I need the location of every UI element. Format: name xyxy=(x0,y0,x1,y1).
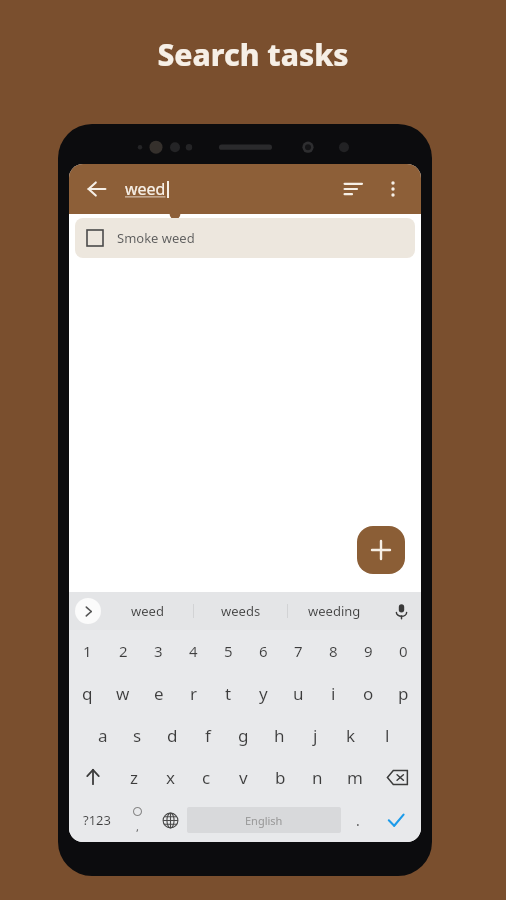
staticText: d xyxy=(167,724,178,747)
staticText: y xyxy=(259,682,268,705)
button[interactable]: b xyxy=(262,756,299,798)
staticText: s xyxy=(133,724,142,747)
staticText: e xyxy=(154,682,164,705)
staticText: z xyxy=(130,766,138,789)
staticText: q xyxy=(82,682,93,705)
button[interactable]: Done xyxy=(374,798,417,842)
staticText: c xyxy=(202,766,211,789)
button[interactable]: weed xyxy=(125,178,333,200)
staticText: h xyxy=(274,724,285,747)
button[interactable]: Emoji and comma xyxy=(121,798,154,842)
button[interactable]: o xyxy=(351,672,386,714)
staticText: o xyxy=(363,682,374,705)
staticText: 1 xyxy=(83,641,92,661)
button[interactable]: s xyxy=(120,714,155,756)
staticText: t xyxy=(225,682,232,705)
button[interactable]: y xyxy=(246,672,281,714)
button[interactable]: w xyxy=(105,672,141,714)
button[interactable]: 5 xyxy=(211,630,246,672)
staticText: 7 xyxy=(294,641,303,661)
button[interactable]: v xyxy=(225,756,262,798)
button[interactable]: Sort xyxy=(333,169,373,209)
button[interactable]: i xyxy=(316,672,351,714)
staticText: k xyxy=(346,724,356,747)
staticText: 6 xyxy=(259,641,268,661)
staticText: j xyxy=(313,724,318,747)
button[interactable]: p xyxy=(386,672,421,714)
staticText: w xyxy=(116,682,130,705)
button[interactable]: x xyxy=(152,756,188,798)
staticText: . xyxy=(356,811,360,830)
button[interactable]: j xyxy=(297,714,333,756)
staticText: 2 xyxy=(119,641,128,661)
button[interactable]: Add task xyxy=(357,526,405,574)
button[interactable]: Smoke weed xyxy=(75,218,415,258)
staticText: 0 xyxy=(399,641,408,661)
button[interactable]: h xyxy=(261,714,297,756)
staticText: 4 xyxy=(189,641,198,661)
button[interactable]: weeds xyxy=(194,592,287,630)
button[interactable]: g xyxy=(225,714,261,756)
staticText: 5 xyxy=(224,641,233,661)
staticText: weed xyxy=(125,178,166,200)
button[interactable]: c xyxy=(188,756,225,798)
button[interactable]: a xyxy=(85,714,120,756)
staticText: n xyxy=(312,766,323,789)
button[interactable]: 9 xyxy=(351,630,386,672)
button[interactable]: q xyxy=(69,672,105,714)
button[interactable]: weed xyxy=(101,592,193,630)
staticText: , xyxy=(136,819,139,834)
button[interactable]: f xyxy=(190,714,225,756)
button[interactable]: d xyxy=(155,714,190,756)
button[interactable]: Backspace xyxy=(373,756,421,798)
staticText: 3 xyxy=(154,641,163,661)
button[interactable]: Change language xyxy=(154,798,187,842)
button[interactable]: 6 xyxy=(246,630,281,672)
button[interactable]: 8 xyxy=(316,630,351,672)
button[interactable]: t xyxy=(211,672,246,714)
button[interactable]: . xyxy=(341,798,374,842)
button[interactable]: r xyxy=(176,672,211,714)
button[interactable]: Expand suggestions xyxy=(75,598,101,624)
button[interactable]: e xyxy=(141,672,176,714)
button[interactable]: m xyxy=(336,756,373,798)
staticText: Search tasks xyxy=(157,34,349,75)
staticText: 8 xyxy=(329,641,338,661)
staticText: weed xyxy=(131,602,164,620)
staticText: ?123 xyxy=(83,811,111,829)
button[interactable]: weeding xyxy=(288,592,381,630)
staticText: u xyxy=(293,682,304,705)
button[interactable]: English xyxy=(187,807,341,833)
staticText: p xyxy=(398,682,409,705)
staticText: i xyxy=(331,682,336,705)
staticText: a xyxy=(98,724,108,747)
staticText: f xyxy=(205,724,211,747)
staticText: v xyxy=(239,766,248,789)
button[interactable]: 0 xyxy=(386,630,421,672)
staticText: l xyxy=(385,724,390,747)
button[interactable]: More options xyxy=(373,169,413,209)
button[interactable]: 1 xyxy=(69,630,105,672)
staticText: g xyxy=(238,724,249,747)
staticText: 9 xyxy=(364,641,373,661)
button[interactable]: 7 xyxy=(281,630,316,672)
button[interactable]: z xyxy=(116,756,152,798)
button[interactable]: 2 xyxy=(105,630,141,672)
button[interactable]: l xyxy=(369,714,405,756)
button[interactable]: 4 xyxy=(176,630,211,672)
staticText: weeding xyxy=(308,602,361,620)
staticText: Smoke weed xyxy=(117,229,195,247)
staticText: weeds xyxy=(221,602,261,620)
staticText: English xyxy=(245,813,283,828)
staticText: b xyxy=(275,766,286,789)
button[interactable]: k xyxy=(333,714,369,756)
button[interactable]: 3 xyxy=(141,630,176,672)
button[interactable]: Voice input xyxy=(381,592,421,630)
button[interactable]: ?123 xyxy=(73,798,121,842)
button[interactable]: u xyxy=(281,672,316,714)
staticText: m xyxy=(347,766,363,789)
button[interactable]: n xyxy=(299,756,336,798)
staticText: x xyxy=(166,766,175,789)
button[interactable]: Shift xyxy=(69,756,116,798)
button[interactable]: Back xyxy=(77,169,117,209)
